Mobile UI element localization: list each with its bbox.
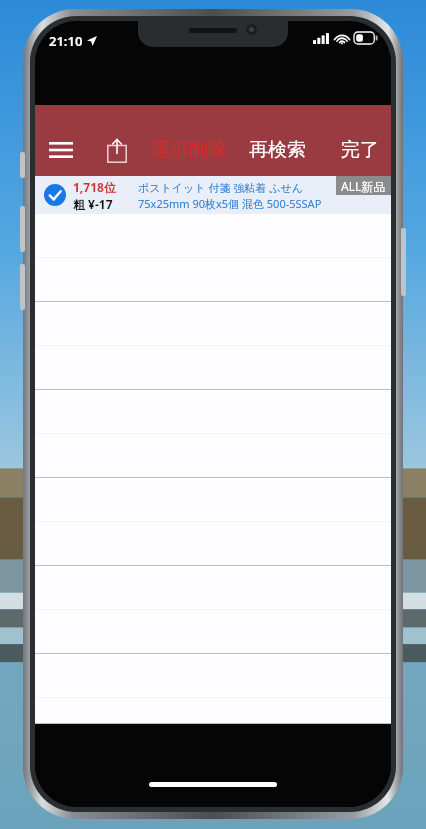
button[interactable]: 選択削除 <box>147 132 231 168</box>
button[interactable] <box>35 522 391 566</box>
button[interactable]: Home <box>149 782 277 787</box>
button[interactable]: 1,718位 <box>35 176 391 214</box>
staticText: ALL新品 <box>341 178 386 194</box>
button[interactable] <box>35 258 391 302</box>
button[interactable] <box>35 346 391 390</box>
button[interactable] <box>35 698 391 724</box>
staticText: 粗 ¥-17 <box>73 196 113 212</box>
staticText: 完了 <box>341 138 379 162</box>
staticText: 75x25mm 90枚x5個 混色 500-5SSAP <box>138 196 322 211</box>
button[interactable]: 再検索 <box>245 132 310 168</box>
staticText: ポストイット 付箋 強粘着 ふせん <box>138 180 303 195</box>
button[interactable]: Menu <box>39 128 83 172</box>
button[interactable]: Share <box>95 128 139 172</box>
button[interactable] <box>35 610 391 654</box>
button[interactable]: ALL新品 <box>336 176 391 195</box>
staticText: 再検索 <box>249 138 306 162</box>
button[interactable]: 完了 <box>337 132 383 168</box>
button[interactable] <box>35 434 391 478</box>
staticText: 1,718位 <box>73 179 116 195</box>
staticText: 21:10 <box>49 32 83 50</box>
staticText: 選択削除 <box>151 138 227 162</box>
